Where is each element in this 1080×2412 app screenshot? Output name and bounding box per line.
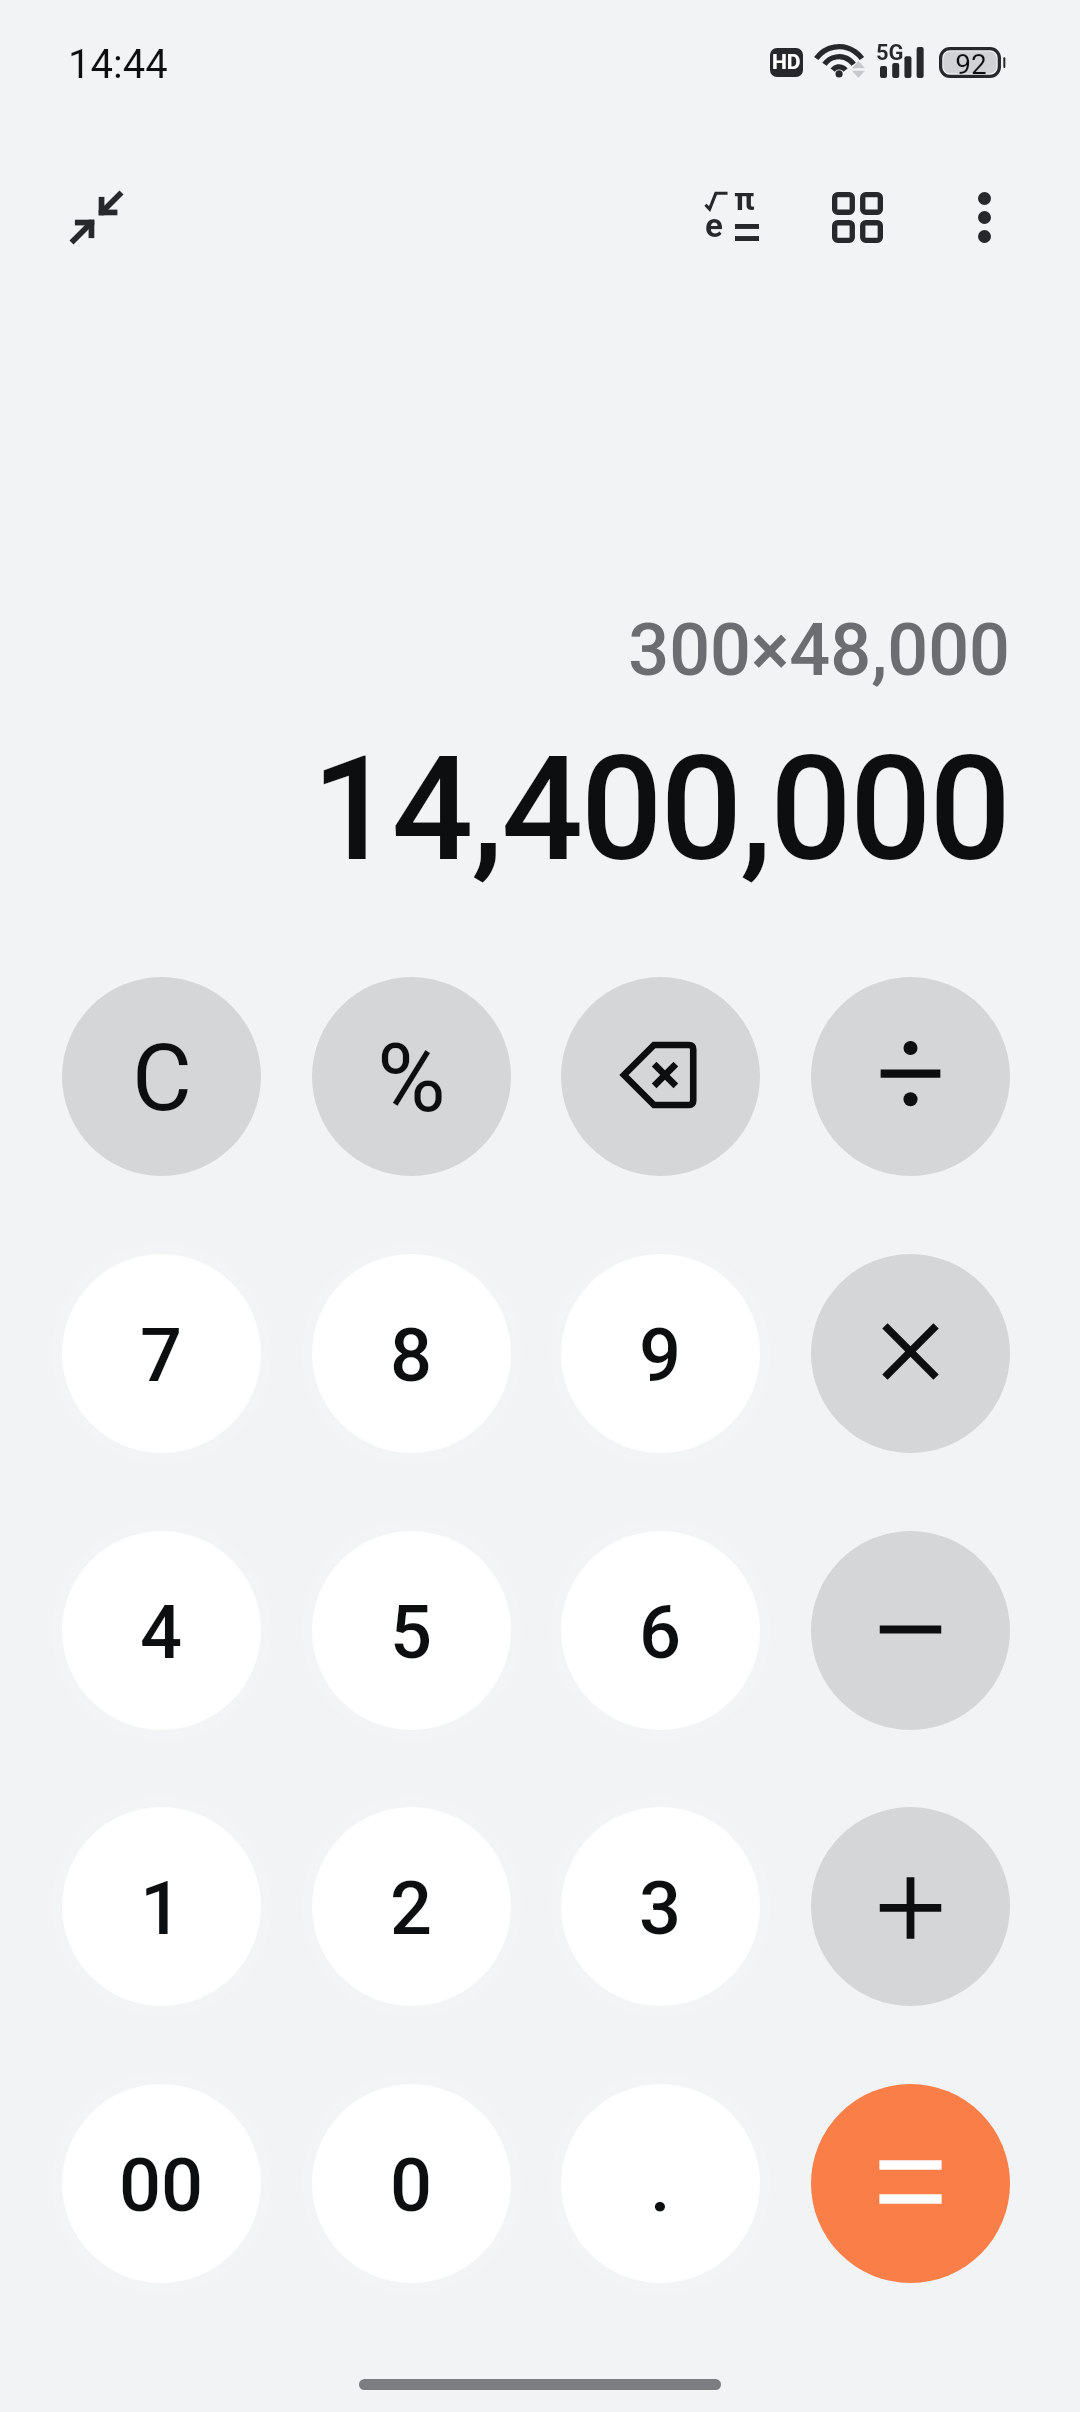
button[interactable]: More options (936, 169, 1033, 266)
button[interactable]: 4 (62, 1531, 261, 1730)
button[interactable]: . (561, 2084, 760, 2283)
button[interactable]: Equals (811, 2084, 1010, 2283)
button[interactable]: 1 (62, 1807, 261, 2006)
button[interactable]: Backspace (561, 977, 760, 1176)
button[interactable]: Subtract (811, 1531, 1010, 1730)
button[interactable]: Add (811, 1807, 1010, 2006)
button[interactable]: 00 (62, 2084, 261, 2283)
button[interactable]: Multiply (811, 1254, 1010, 1453)
button[interactable]: % (312, 977, 511, 1176)
button[interactable]: 8 (312, 1254, 511, 1453)
staticText: 300×48,000 (0, 608, 1010, 692)
button[interactable]: 3 (561, 1807, 760, 2006)
staticText: 7 (140, 1312, 183, 1399)
button[interactable]: Scientific mode (683, 168, 780, 265)
staticText: 1 (140, 1865, 183, 1952)
button[interactable]: Divide (811, 977, 1010, 1176)
staticText: 3 (639, 1865, 682, 1952)
staticText: . (650, 2142, 671, 2229)
staticText: 9 (639, 1312, 682, 1399)
button[interactable]: 7 (62, 1254, 261, 1453)
staticText: 92 (941, 48, 1001, 81)
staticText: 14,400,000 (0, 725, 1009, 894)
button[interactable]: 9 (561, 1254, 760, 1453)
staticText: π (734, 180, 755, 218)
staticText: % (377, 1024, 446, 1134)
staticText: 0 (390, 2142, 433, 2229)
button[interactable]: C (62, 977, 261, 1176)
staticText: 4 (140, 1589, 183, 1676)
staticText: 14:44 (68, 41, 168, 88)
staticText: HD (772, 50, 801, 75)
button[interactable]: 2 (312, 1807, 511, 2006)
staticText: e (705, 206, 723, 245)
staticText: 8 (390, 1312, 433, 1399)
staticText: 6 (639, 1589, 682, 1676)
button[interactable]: Collapse (48, 169, 145, 266)
button[interactable]: 5 (312, 1531, 511, 1730)
staticText: 5 (390, 1589, 433, 1676)
staticText: 5G (876, 40, 904, 66)
staticText: 00 (119, 2142, 204, 2229)
button[interactable]: Converters (809, 169, 906, 266)
staticText: C (132, 1025, 192, 1133)
staticText: 2 (390, 1865, 433, 1952)
button[interactable]: 6 (561, 1531, 760, 1730)
button[interactable]: 0 (312, 2084, 511, 2283)
